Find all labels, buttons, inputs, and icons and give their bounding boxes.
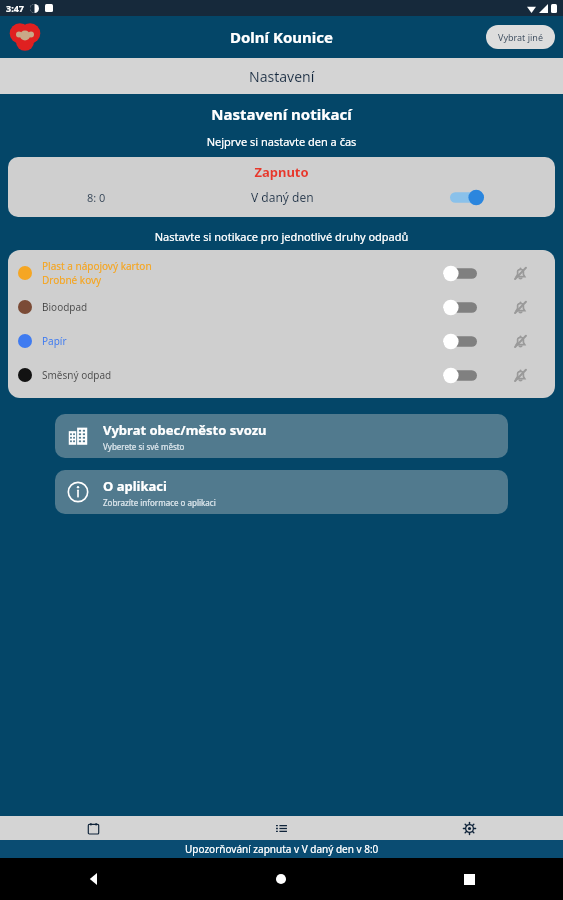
button[interactable]: Zpět <box>0 858 187 900</box>
button[interactable]: Vypnuto <box>443 300 477 315</box>
staticText: Nejprve si nastavte den a čas <box>0 134 563 149</box>
button[interactable]: Notifikace vypnuty <box>495 333 545 350</box>
button[interactable]: Notifikace vypnuty <box>495 265 545 282</box>
staticText: Nastavte si notikace pro jednotlivé druh… <box>0 229 563 244</box>
staticText: Zapnuto <box>8 163 555 181</box>
button[interactable]: Zapnuto <box>450 190 484 205</box>
staticText: Dolní Kounice <box>230 27 333 47</box>
staticText: 8: 0 <box>87 190 106 205</box>
button[interactable]: Vybrat obec/město svozu <box>55 414 508 458</box>
staticText: Upozorňování zapnuta v V daný den v 8:0 <box>185 842 379 856</box>
button[interactable]: Papír <box>8 324 555 358</box>
button[interactable]: Znak obce <box>10 22 40 52</box>
staticText: Nastavení notikací <box>0 104 563 124</box>
staticText: Směsný odpad <box>42 368 112 382</box>
button[interactable]: Plast a nápojový karton <box>8 256 555 290</box>
staticText: Vybrat obec/město svozu <box>103 421 267 439</box>
button[interactable]: Seznam <box>187 816 375 840</box>
button[interactable]: Bioodpad <box>8 290 555 324</box>
button[interactable]: Vybrat jiné <box>486 25 555 49</box>
button[interactable]: Zapnuto <box>8 157 555 217</box>
staticText: Drobné kovy <box>42 273 102 287</box>
staticText: Vyberete si své město <box>103 441 185 452</box>
staticText: Papír <box>42 334 67 348</box>
button[interactable]: Směsný odpad <box>8 358 555 392</box>
staticText: Bioodpad <box>42 300 88 314</box>
staticText: 3:47 <box>6 2 24 14</box>
button[interactable]: Kalendář <box>0 816 187 840</box>
button[interactable]: Poslední aplikace <box>375 858 563 900</box>
button[interactable]: O aplikaci <box>55 470 508 514</box>
button[interactable]: Notifikace vypnuty <box>495 367 545 384</box>
button[interactable]: Vypnuto <box>443 266 477 281</box>
staticText: Zobrazíte informace o aplikaci <box>103 497 216 508</box>
button[interactable]: Vypnuto <box>443 334 477 349</box>
staticText: V daný den <box>251 189 314 205</box>
staticText: O aplikaci <box>103 477 167 495</box>
staticText: Vybrat jiné <box>498 31 543 43</box>
staticText: Plast a nápojový karton <box>42 259 152 273</box>
staticText: Nastavení <box>249 67 315 86</box>
button[interactable]: Notifikace vypnuty <box>495 299 545 316</box>
button[interactable]: Domů <box>187 858 375 900</box>
button[interactable]: Vypnuto <box>443 368 477 383</box>
button[interactable]: Nastavení <box>375 816 563 840</box>
